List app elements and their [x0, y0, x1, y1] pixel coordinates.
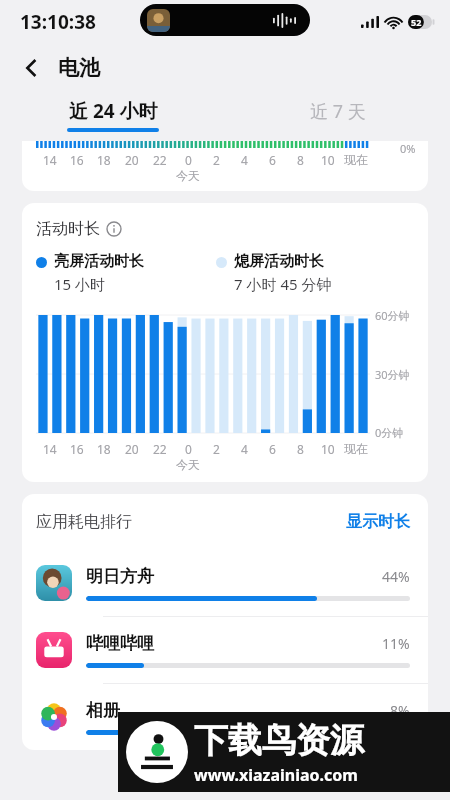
staticText: 14 [43, 152, 57, 168]
staticText: 30分钟 [375, 367, 410, 382]
staticText: 近 24 小时 [69, 98, 158, 124]
staticText: 60分钟 [375, 308, 410, 323]
staticText: 现在 [344, 441, 368, 456]
staticText: 22 [153, 441, 167, 457]
staticText: 0% [400, 141, 416, 156]
staticText: 22 [153, 152, 167, 168]
staticText: 2 [213, 152, 220, 168]
staticText: 11% [382, 634, 410, 653]
staticText: 0 [185, 152, 192, 168]
staticText: 活动时长 [36, 219, 100, 239]
staticText: 18 [97, 152, 111, 168]
staticText: 哔哩哔哩 [86, 633, 154, 654]
staticText: 相册 [86, 700, 120, 721]
staticText: 8% [390, 701, 410, 720]
staticText: 0分钟 [375, 425, 404, 440]
staticText: 6 [269, 441, 276, 457]
staticText: 明日方舟 [86, 566, 154, 587]
staticText: 16 [70, 152, 84, 168]
staticText: 现在 [344, 152, 368, 167]
staticText: 8 [297, 441, 304, 457]
staticText: 13:10:38 [20, 9, 96, 35]
staticText: 10 [321, 152, 335, 168]
button[interactable]: 相册 [22, 684, 428, 750]
staticText: 7 小时 45 分钟 [234, 274, 332, 294]
staticText: 电池 [58, 55, 100, 81]
staticText: 8 [297, 152, 304, 168]
button[interactable]: 哔哩哔哩 [22, 617, 428, 683]
button[interactable]: Back [12, 49, 50, 87]
staticText: 近 7 天 [310, 99, 366, 124]
button[interactable]: Info [106, 221, 122, 237]
staticText: 4 [241, 152, 248, 168]
staticText: 20 [125, 441, 139, 457]
staticText: 今天 [176, 168, 200, 183]
staticText: 4 [241, 441, 248, 457]
staticText: 16 [70, 441, 84, 457]
staticText: 熄屏活动时长 [234, 252, 324, 271]
staticText: 15 小时 [54, 274, 106, 294]
staticText: www.xiazainiao.com [194, 764, 358, 786]
staticText: 14 [43, 441, 57, 457]
staticText: 应用耗电排行 [36, 512, 132, 532]
button[interactable]: 显示时长 [342, 508, 414, 536]
staticText: 亮屏活动时长 [54, 252, 144, 271]
staticText: 10 [321, 441, 335, 457]
staticText: 今天 [176, 457, 200, 472]
button[interactable]: 近 24 小时 [0, 92, 225, 138]
staticText: 2 [213, 441, 220, 457]
staticText: 显示时长 [346, 512, 410, 532]
staticText: 下载鸟资源 [194, 719, 364, 762]
staticText: 44% [382, 567, 410, 586]
staticText: 6 [269, 152, 276, 168]
staticText: 0 [185, 441, 192, 457]
button[interactable]: 近 7 天 [225, 92, 450, 138]
staticText: 52 [411, 16, 422, 28]
button[interactable]: 明日方舟 [22, 550, 428, 616]
staticText: 20 [125, 152, 139, 168]
staticText: 18 [97, 441, 111, 457]
